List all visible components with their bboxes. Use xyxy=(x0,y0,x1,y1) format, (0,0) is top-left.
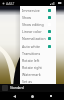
button[interactable]: Normalization xyxy=(20,35,56,42)
button[interactable]: Immersive mode xyxy=(20,7,56,14)
button[interactable]: Rotate right xyxy=(20,64,56,71)
button[interactable]: Standard xyxy=(10,86,24,90)
staticText: Rotate left xyxy=(22,58,48,63)
button[interactable]: Home xyxy=(27,92,37,100)
staticText: AA&T xyxy=(6,1,15,6)
button[interactable]: Show editing controls xyxy=(20,21,56,28)
staticText: Auto white balance xyxy=(22,44,48,49)
button[interactable]: Rotate left xyxy=(20,57,56,64)
button[interactable]: Transitions xyxy=(20,50,56,57)
staticText: Normalization xyxy=(22,36,48,41)
staticText: Set as wallpaper xyxy=(22,79,48,84)
staticText: Show editing controls xyxy=(22,22,48,27)
staticText: Linear color space xyxy=(22,29,48,34)
button[interactable]: Recents xyxy=(46,92,56,100)
staticText: Watermark xyxy=(22,72,48,77)
staticText: Immersive mode xyxy=(22,8,48,13)
button[interactable]: Linear color space xyxy=(20,28,56,35)
staticText: Rotate right xyxy=(22,65,48,70)
button[interactable]: Set as wallpaper xyxy=(20,78,56,85)
staticText: Transitions xyxy=(22,51,48,56)
button[interactable]: Watermark xyxy=(20,71,56,78)
button[interactable]: Back xyxy=(9,92,19,100)
staticText: Show rendering time xyxy=(22,15,48,20)
button[interactable]: Auto white balance xyxy=(20,43,56,50)
button[interactable]: Show rendering time xyxy=(20,14,56,21)
staticText: Standard xyxy=(10,86,24,90)
